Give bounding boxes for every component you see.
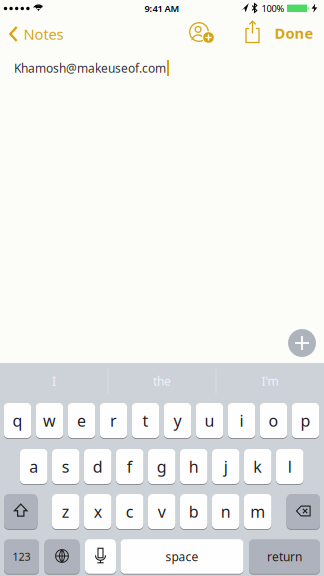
staticText: p (300, 410, 310, 431)
staticText: x (94, 501, 102, 522)
staticText: the (153, 373, 171, 389)
staticText: k (253, 456, 262, 477)
staticText: t (142, 410, 148, 431)
staticText: return (267, 548, 302, 564)
staticText: d (93, 456, 103, 477)
staticText: q (12, 410, 22, 431)
button[interactable]: y (164, 402, 191, 438)
button[interactable]: Shift (4, 493, 37, 529)
button[interactable]: b (180, 493, 207, 529)
button[interactable]: d (84, 448, 111, 484)
staticText: v (158, 501, 166, 522)
button[interactable]: Add Attachment (288, 329, 316, 357)
staticText: l (288, 456, 292, 477)
staticText: m (250, 501, 265, 522)
button[interactable]: u (196, 402, 223, 438)
button[interactable]: x (84, 493, 111, 529)
button[interactable]: z (52, 493, 79, 529)
button[interactable]: Add People (185, 19, 215, 47)
button[interactable]: w (36, 402, 63, 438)
staticText: Notes (23, 24, 63, 44)
button[interactable]: m (244, 493, 271, 529)
button[interactable]: 123 (4, 539, 39, 574)
button[interactable]: c (116, 493, 143, 529)
button[interactable]: space (120, 539, 243, 574)
staticText: j (224, 456, 228, 477)
button[interactable]: t (132, 402, 159, 438)
staticText: w (43, 410, 56, 431)
button[interactable]: Next Keyboard (44, 539, 79, 574)
button[interactable]: Share (241, 19, 263, 45)
staticText: I (52, 373, 56, 389)
button[interactable]: i (228, 402, 255, 438)
button[interactable]: p (292, 402, 319, 438)
staticText: h (189, 456, 199, 477)
button[interactable]: f (116, 448, 143, 484)
button[interactable]: the (109, 364, 215, 398)
button[interactable]: k (244, 448, 271, 484)
button[interactable]: Back (8, 20, 63, 48)
staticText: Done (274, 23, 313, 43)
staticText: space (165, 548, 198, 564)
staticText: z (62, 501, 70, 522)
button[interactable]: v (148, 493, 175, 529)
button[interactable]: l (276, 448, 303, 484)
staticText: e (77, 410, 86, 431)
button[interactable]: Done (274, 19, 313, 47)
staticText: b (189, 501, 199, 522)
staticText: n (221, 501, 231, 522)
staticText: 100% (261, 2, 284, 15)
staticText: s (62, 456, 70, 477)
button[interactable]: return (249, 539, 320, 574)
button[interactable]: Dictate (85, 539, 116, 574)
button[interactable]: o (260, 402, 287, 438)
button[interactable]: I'm (217, 364, 323, 398)
button[interactable]: s (52, 448, 79, 484)
button[interactable]: e (68, 402, 95, 438)
button[interactable]: a (20, 448, 47, 484)
staticText: I'm (261, 373, 278, 389)
staticText: y (173, 410, 181, 431)
staticText: g (157, 456, 167, 477)
staticText: r (110, 410, 117, 431)
button[interactable]: h (180, 448, 207, 484)
staticText: 123 (12, 549, 30, 564)
button[interactable]: j (212, 448, 239, 484)
staticText: a (29, 456, 38, 477)
staticText: c (126, 501, 134, 522)
staticText: u (204, 410, 214, 431)
staticText: i (239, 410, 243, 431)
staticText: 9:41 AM (144, 2, 179, 15)
staticText: o (268, 410, 278, 431)
button[interactable]: r (100, 402, 127, 438)
staticText: f (127, 456, 133, 477)
staticText: Khamosh@makeuseof.com (14, 60, 166, 76)
button[interactable]: n (212, 493, 239, 529)
button[interactable]: g (148, 448, 175, 484)
button[interactable]: Delete (286, 493, 320, 529)
button[interactable]: q (4, 402, 31, 438)
